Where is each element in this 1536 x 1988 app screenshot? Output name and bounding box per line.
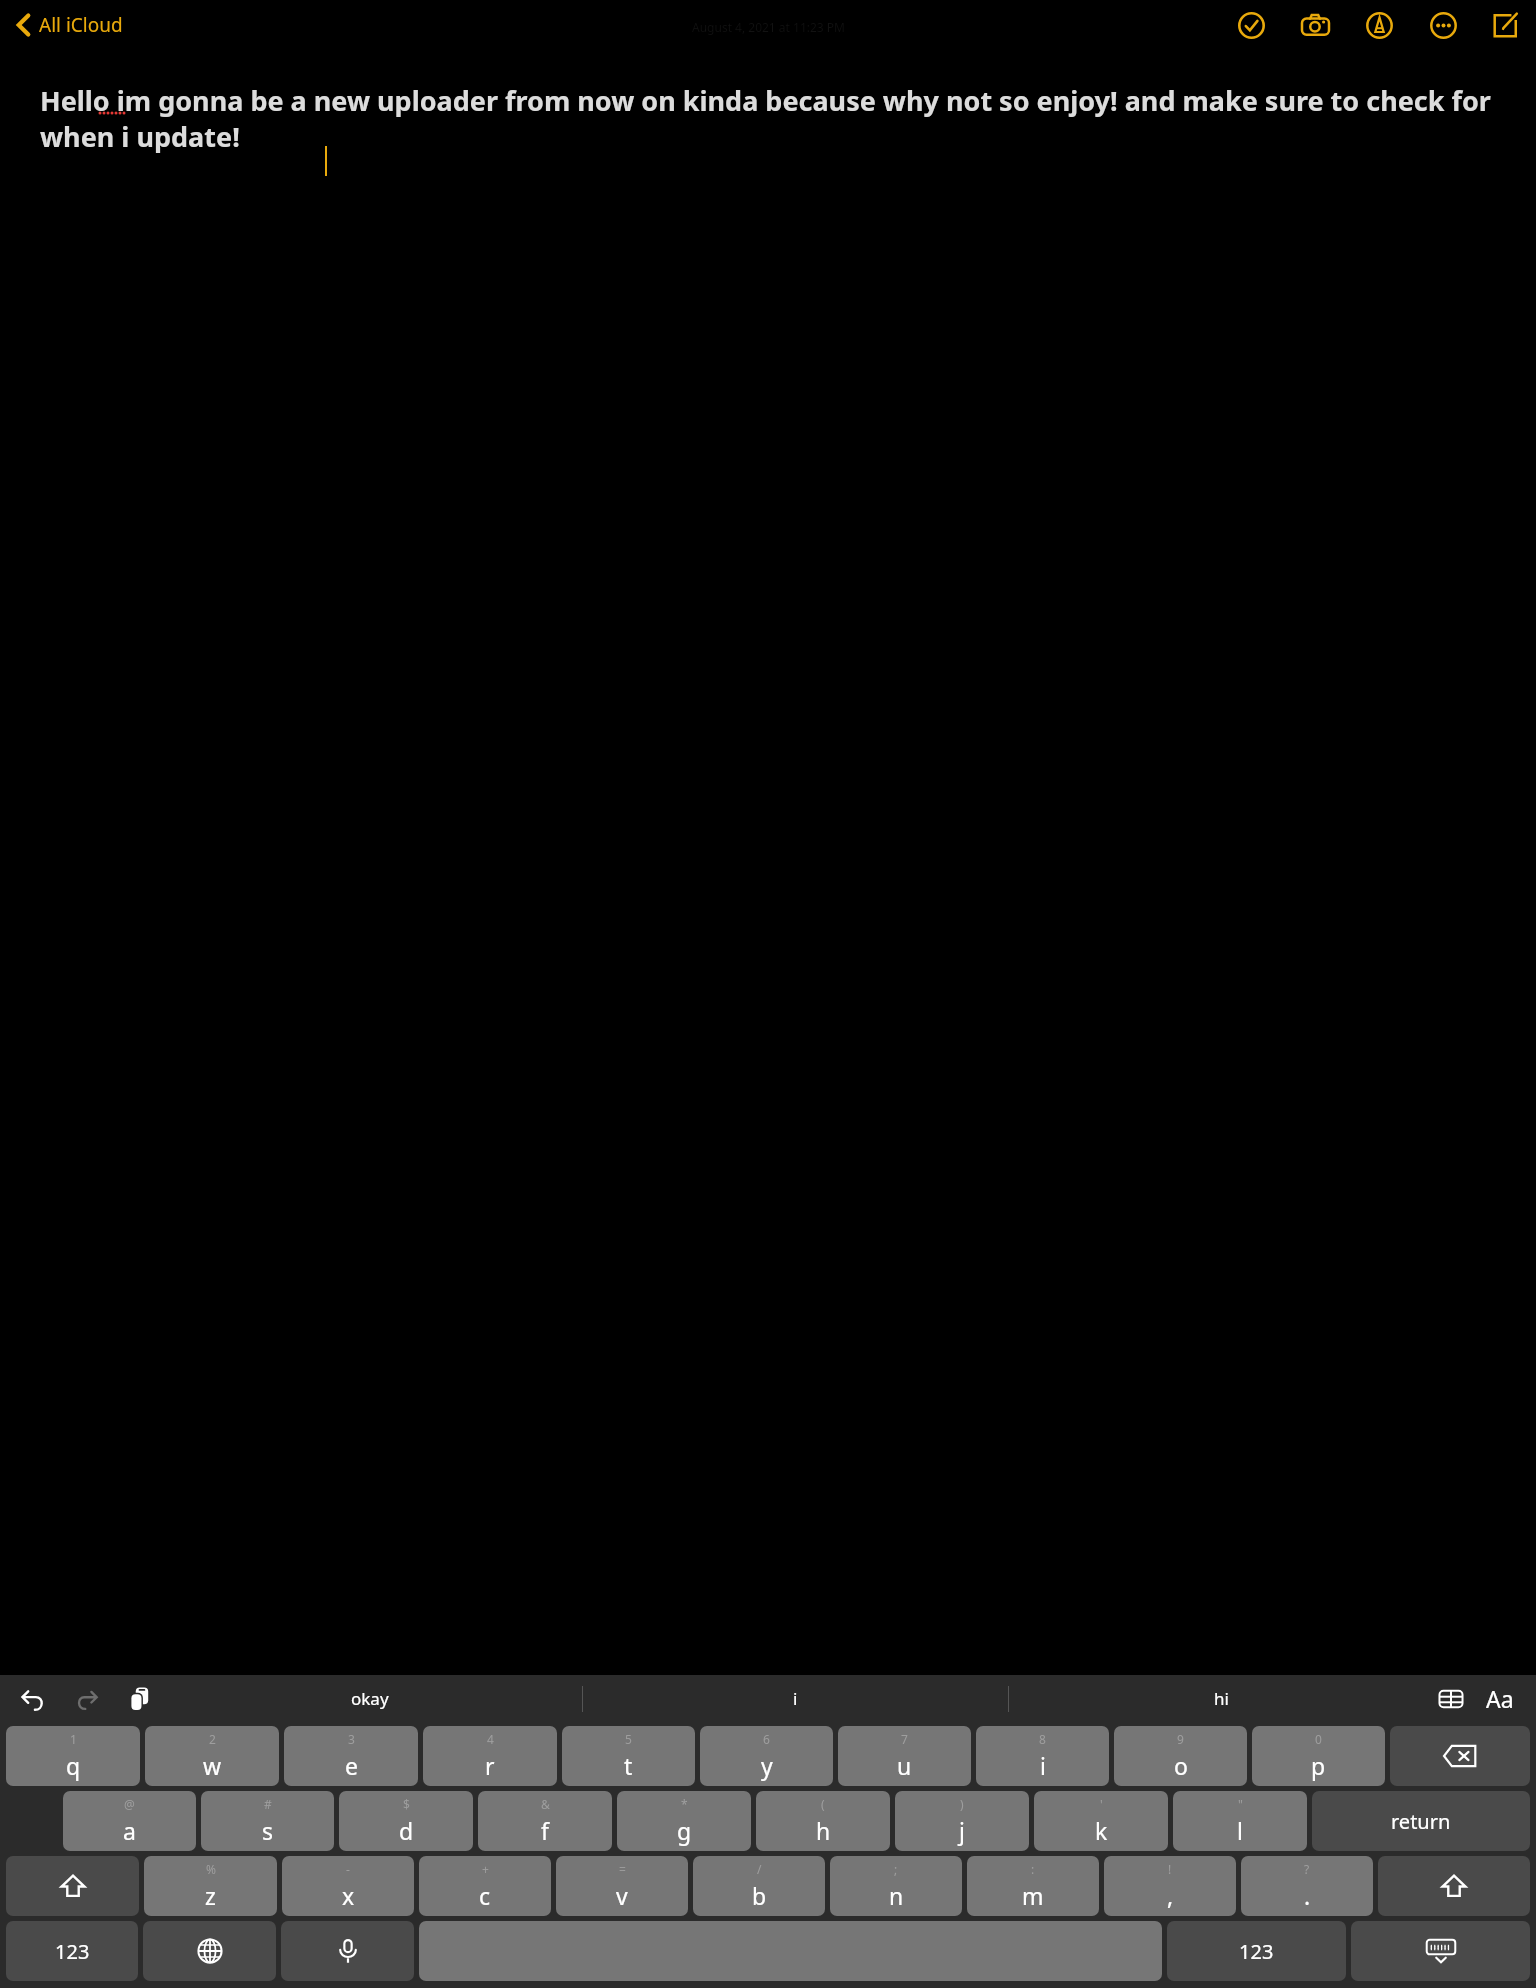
staticText: ?: [1304, 1861, 1310, 1877]
staticText: All iCloud: [39, 12, 123, 38]
button[interactable]: okay: [158, 1675, 582, 1722]
button[interactable]: Change keyboard: [143, 1921, 276, 1981]
button[interactable]: 6: [700, 1726, 833, 1786]
staticText: b: [752, 1880, 767, 1911]
staticText: t: [624, 1750, 633, 1781]
button[interactable]: Aa: [1480, 1679, 1520, 1718]
button[interactable]: 123: [6, 1921, 138, 1981]
staticText: hi: [1214, 1687, 1229, 1710]
button[interactable]: 5: [562, 1726, 695, 1786]
button[interactable]: return: [1312, 1791, 1530, 1851]
staticText: h: [816, 1815, 831, 1846]
staticText: /: [757, 1861, 762, 1877]
staticText: $: [403, 1796, 410, 1812]
button[interactable]: 1: [6, 1726, 140, 1786]
button[interactable]: :: [967, 1856, 1099, 1916]
button[interactable]: ': [1034, 1791, 1168, 1851]
staticText: j: [959, 1815, 965, 1846]
staticText: August 4, 2021 at 11:23 PM: [692, 19, 845, 35]
button[interactable]: 7: [838, 1726, 971, 1786]
staticText: 6: [763, 1731, 770, 1747]
button[interactable]: Shift: [6, 1856, 139, 1916]
button[interactable]: Dictate: [281, 1921, 414, 1981]
button[interactable]: $: [339, 1791, 473, 1851]
button[interactable]: Shift right: [1378, 1856, 1530, 1916]
button[interactable]: ): [895, 1791, 1029, 1851]
button[interactable]: &: [478, 1791, 612, 1851]
staticText: okay: [351, 1687, 389, 1710]
button[interactable]: i: [583, 1675, 1008, 1722]
staticText: 4: [487, 1731, 494, 1747]
staticText: *: [681, 1796, 688, 1812]
button[interactable]: Hide keyboard: [1351, 1921, 1530, 1981]
staticText: g: [677, 1815, 692, 1846]
staticText: 3: [348, 1731, 355, 1747]
staticText: +: [482, 1861, 489, 1877]
button[interactable]: 3: [284, 1726, 418, 1786]
button[interactable]: 8: [976, 1726, 1109, 1786]
button[interactable]: More: [1426, 8, 1460, 42]
staticText: :: [1031, 1861, 1035, 1877]
button[interactable]: Delete: [1390, 1726, 1530, 1786]
staticText: !: [1168, 1861, 1172, 1877]
staticText: v: [616, 1880, 628, 1911]
staticText: c: [479, 1880, 491, 1911]
staticText: ': [1100, 1796, 1103, 1812]
button[interactable]: ;: [830, 1856, 962, 1916]
staticText: q: [66, 1750, 81, 1781]
staticText: w: [203, 1750, 222, 1781]
button[interactable]: Paste: [124, 1682, 158, 1716]
button[interactable]: Undo: [16, 1682, 50, 1716]
staticText: 123: [1239, 1938, 1274, 1965]
staticText: p: [1311, 1750, 1326, 1781]
staticText: 0: [1315, 1731, 1322, 1747]
button[interactable]: ?: [1241, 1856, 1373, 1916]
button[interactable]: Markup: [1362, 8, 1396, 42]
button[interactable]: 0: [1252, 1726, 1385, 1786]
staticText: m: [1022, 1880, 1044, 1911]
button[interactable]: +: [419, 1856, 551, 1916]
button[interactable]: (: [756, 1791, 890, 1851]
button[interactable]: -: [282, 1856, 414, 1916]
staticText: y: [761, 1750, 773, 1781]
button[interactable]: New note: [1488, 8, 1522, 42]
button[interactable]: !: [1104, 1856, 1236, 1916]
staticText: .: [1304, 1880, 1311, 1911]
staticText: n: [889, 1880, 904, 1911]
button[interactable]: Camera: [1298, 8, 1332, 42]
button[interactable]: #: [201, 1791, 334, 1851]
staticText: ): [960, 1796, 964, 1812]
button[interactable]: All iCloud: [10, 8, 129, 42]
staticText: 1: [70, 1731, 77, 1747]
staticText: -: [346, 1861, 350, 1877]
staticText: 2: [209, 1731, 216, 1747]
button[interactable]: @: [63, 1791, 196, 1851]
button[interactable]: ": [1173, 1791, 1307, 1851]
staticText: @: [124, 1796, 135, 1812]
staticText: ;: [894, 1861, 898, 1877]
button[interactable]: Table: [1434, 1682, 1468, 1716]
button[interactable]: 2: [145, 1726, 279, 1786]
button[interactable]: =: [556, 1856, 688, 1916]
staticText: (: [821, 1796, 825, 1812]
staticText: u: [897, 1750, 912, 1781]
staticText: 7: [901, 1731, 908, 1747]
button[interactable]: %: [144, 1856, 277, 1916]
button[interactable]: hi: [1009, 1675, 1434, 1722]
staticText: &: [541, 1796, 550, 1812]
staticText: Hello im gonna be a new uploader from no…: [40, 82, 1496, 155]
staticText: f: [541, 1815, 549, 1846]
button[interactable]: *: [617, 1791, 751, 1851]
button[interactable]: Done: [1234, 8, 1268, 42]
button[interactable]: 4: [423, 1726, 557, 1786]
staticText: r: [485, 1750, 495, 1781]
button[interactable]: 9: [1114, 1726, 1247, 1786]
staticText: =: [619, 1861, 626, 1877]
button[interactable]: /: [693, 1856, 825, 1916]
staticText: 8: [1039, 1731, 1046, 1747]
staticText: x: [342, 1880, 355, 1911]
staticText: l: [1237, 1815, 1243, 1846]
button[interactable]: 123: [1167, 1921, 1346, 1981]
staticText: d: [399, 1815, 414, 1846]
